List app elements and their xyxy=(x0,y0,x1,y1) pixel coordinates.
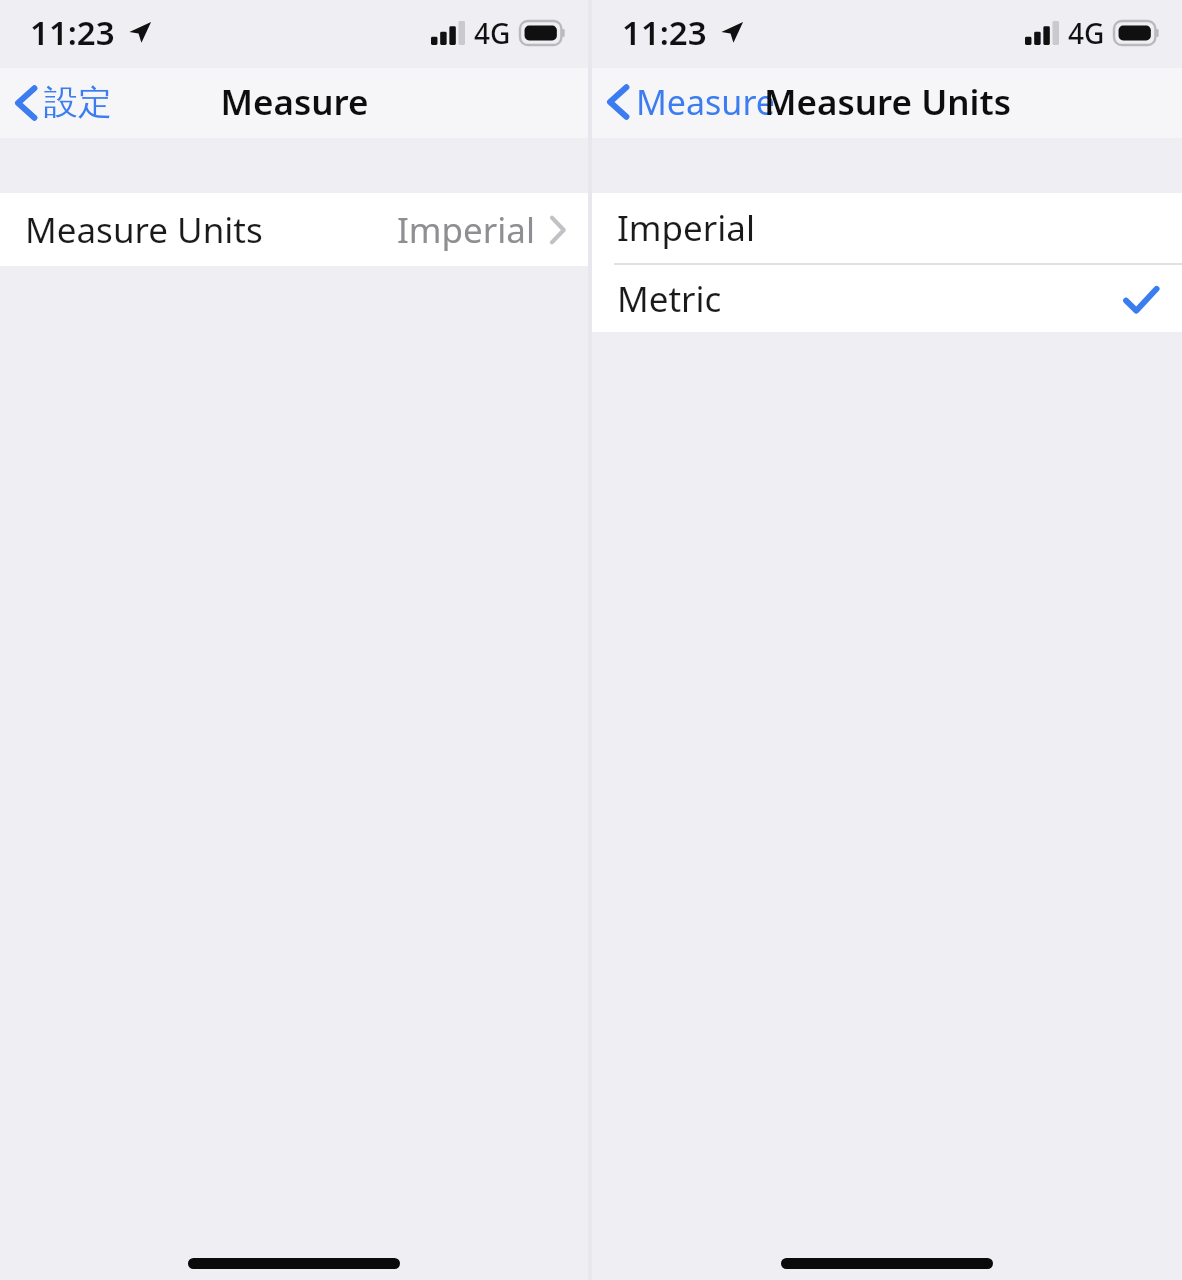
staticText: 11:23 xyxy=(30,10,115,55)
staticText: 11:23 xyxy=(622,10,707,55)
staticText: Measure xyxy=(636,79,775,125)
staticText: Measure Units xyxy=(764,78,1011,126)
button[interactable]: Back to Measure xyxy=(592,73,789,131)
staticText: Metric xyxy=(617,275,722,323)
staticText: 4G xyxy=(1068,14,1105,52)
button[interactable]: Imperial xyxy=(592,193,1182,263)
button[interactable]: Measure Units xyxy=(0,193,588,266)
button[interactable]: Back to Settings xyxy=(0,75,126,130)
staticText: Imperial xyxy=(397,206,536,254)
staticText: Imperial xyxy=(617,204,756,252)
staticText: 設定 xyxy=(44,81,112,124)
button[interactable]: Metric xyxy=(592,265,1182,332)
staticText: Measure xyxy=(220,78,369,126)
staticText: 4G xyxy=(474,14,511,52)
staticText: Measure Units xyxy=(25,206,263,254)
